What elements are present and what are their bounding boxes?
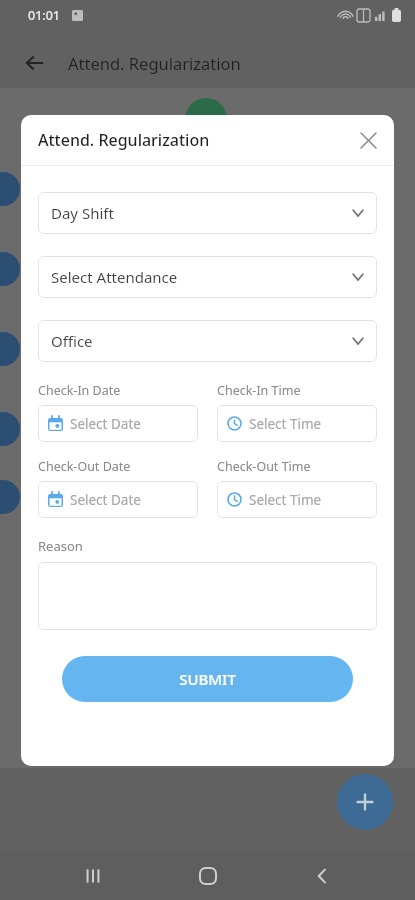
staticText: Office bbox=[51, 331, 93, 351]
button[interactable]: Add bbox=[337, 774, 393, 830]
button[interactable] bbox=[38, 562, 377, 630]
staticText: 01:01 bbox=[28, 7, 61, 24]
staticText: Select Date bbox=[70, 491, 141, 509]
button[interactable]: SUBMIT bbox=[62, 656, 353, 702]
staticText: Select Attendance bbox=[51, 267, 178, 287]
button[interactable]: Home bbox=[186, 854, 230, 898]
button[interactable]: Recents bbox=[71, 854, 115, 898]
staticText: Select Date bbox=[70, 415, 141, 433]
button[interactable]: Select Attendance bbox=[38, 256, 377, 298]
button[interactable]: Close bbox=[351, 123, 385, 157]
button[interactable]: Back bbox=[18, 47, 50, 79]
staticText: Check-In Date bbox=[38, 382, 121, 399]
staticText: Reason bbox=[38, 537, 83, 555]
button[interactable]: Day Shift bbox=[38, 192, 377, 234]
staticText: Check-In Time bbox=[217, 382, 301, 399]
button[interactable]: Office bbox=[38, 320, 377, 362]
button[interactable]: Select Time bbox=[217, 481, 377, 518]
staticText: Check-Out Time bbox=[217, 458, 311, 475]
button[interactable]: Back bbox=[300, 854, 344, 898]
staticText: Day Shift bbox=[51, 203, 114, 223]
staticText: Select Time bbox=[249, 491, 322, 509]
button[interactable]: Select Date bbox=[38, 481, 198, 518]
staticText: SUBMIT bbox=[179, 669, 236, 689]
staticText: Attend. Regularization bbox=[68, 52, 241, 74]
staticText: Select Time bbox=[249, 415, 322, 433]
staticText: Attend. Regularization bbox=[38, 129, 210, 151]
staticText: Check-Out Date bbox=[38, 458, 131, 475]
button[interactable]: Select Time bbox=[217, 405, 377, 442]
button[interactable]: Select Date bbox=[38, 405, 198, 442]
